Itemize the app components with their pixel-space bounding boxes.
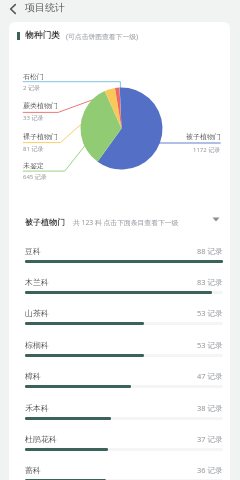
staticText: 83 记录 bbox=[197, 277, 223, 287]
staticText: 山茶科 bbox=[25, 308, 49, 318]
staticText: 杜鹃花科 bbox=[25, 434, 57, 444]
staticText: 38 记录 bbox=[197, 403, 223, 413]
staticText: 88 记录 bbox=[197, 246, 223, 256]
button[interactable] bbox=[16, 399, 224, 430]
staticText: 未鉴定 bbox=[23, 161, 44, 170]
staticText: 1172 记录 bbox=[193, 146, 221, 154]
button[interactable] bbox=[16, 367, 224, 398]
staticText: 木兰科 bbox=[25, 277, 49, 287]
button[interactable] bbox=[16, 273, 224, 304]
staticText: 被子植物门 bbox=[186, 132, 221, 141]
staticText: 蕨类植物门 bbox=[23, 101, 58, 110]
button[interactable] bbox=[16, 430, 224, 461]
button[interactable] bbox=[16, 242, 224, 273]
staticText: 33 记录 bbox=[23, 114, 44, 122]
staticText: 石松门 bbox=[23, 72, 44, 81]
staticText: 樟科 bbox=[25, 371, 41, 381]
button[interactable]: Expand bbox=[209, 212, 223, 226]
button[interactable]: Back bbox=[4, 0, 22, 18]
staticText: 645 记录 bbox=[23, 173, 47, 181]
staticText: 36 记录 bbox=[197, 465, 223, 475]
staticText: 豆科 bbox=[25, 246, 41, 256]
staticText: 被子植物门 bbox=[25, 217, 65, 227]
button[interactable] bbox=[16, 461, 224, 480]
staticText: 裸子植物门 bbox=[23, 132, 58, 141]
button[interactable] bbox=[16, 304, 224, 335]
button[interactable] bbox=[16, 336, 224, 367]
staticText: 47 记录 bbox=[197, 371, 223, 381]
staticText: 53 记录 bbox=[197, 340, 223, 350]
staticText: 53 记录 bbox=[197, 308, 223, 318]
staticText: 2 记录 bbox=[23, 84, 40, 92]
staticText: 共 123 科 点击下面条目查看下一级 bbox=[73, 218, 179, 227]
staticText: 物种门类 bbox=[25, 30, 60, 41]
staticText: 禾本科 bbox=[25, 403, 49, 413]
staticText: 棕榈科 bbox=[25, 340, 49, 350]
staticText: 蔷科 bbox=[25, 465, 41, 475]
staticText: (可点击饼图查看下一级) bbox=[66, 32, 139, 41]
staticText: 37 记录 bbox=[197, 434, 223, 444]
staticText: 81 记录 bbox=[23, 145, 44, 153]
staticText: 项目统计 bbox=[25, 1, 65, 14]
